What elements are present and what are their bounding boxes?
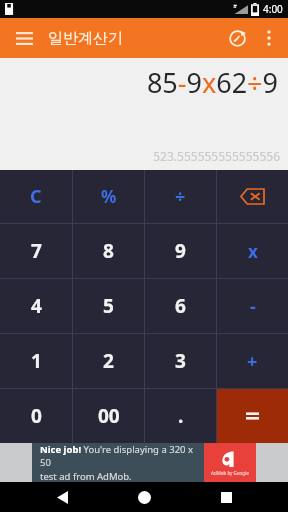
staticText: 2	[103, 348, 114, 374]
button[interactable]: ÷	[145, 170, 216, 223]
staticText: 00	[98, 403, 120, 429]
button[interactable]: 6	[145, 279, 216, 333]
button[interactable]: Advertisement	[0, 443, 288, 482]
button[interactable]: 1	[0, 334, 72, 388]
staticText: 3	[175, 348, 186, 374]
staticText: 5	[103, 293, 114, 319]
button[interactable]: 3	[145, 334, 216, 388]
button[interactable]: 9	[145, 224, 216, 278]
staticText: %	[101, 185, 117, 208]
staticText: 85-9x62÷9	[146, 64, 278, 101]
staticText: .	[178, 403, 184, 429]
button[interactable]: More options	[254, 23, 284, 53]
button[interactable]: Equals	[217, 389, 288, 443]
staticText: 8	[103, 238, 114, 264]
button[interactable]: 0	[0, 389, 72, 443]
button[interactable]: 5	[73, 279, 144, 333]
button[interactable]: x	[217, 224, 288, 278]
staticText: ÷	[175, 184, 186, 209]
button[interactable]: .	[145, 389, 216, 443]
staticText: test ad from AdMob.	[40, 470, 132, 482]
button[interactable]: 7	[0, 224, 72, 278]
button[interactable]: -	[217, 279, 288, 333]
button[interactable]: Home	[124, 482, 164, 512]
staticText: 일반계산기	[48, 29, 123, 48]
staticText: -	[250, 294, 256, 319]
button[interactable]: Recents	[206, 482, 246, 512]
button[interactable]: 00	[73, 389, 144, 443]
staticText: 4	[31, 293, 42, 319]
button[interactable]: %	[73, 170, 144, 223]
button[interactable]: C	[0, 170, 72, 223]
staticText: Nice job! You're displaying a 320 x 50	[40, 443, 204, 469]
button[interactable]: 8	[73, 224, 144, 278]
staticText: 9	[175, 238, 186, 264]
button[interactable]: 4	[0, 279, 72, 333]
staticText: x	[248, 240, 258, 263]
staticText: AdMob by Google	[211, 470, 249, 476]
button[interactable]: Menu	[8, 22, 40, 54]
staticText: C	[30, 184, 42, 209]
button[interactable]: +	[217, 334, 288, 388]
staticText: 0	[31, 403, 42, 429]
staticText: 1	[31, 348, 42, 374]
staticText: 523.555555555555556	[153, 148, 280, 164]
staticText: 7	[31, 238, 42, 264]
button[interactable]: Backspace	[217, 170, 288, 223]
staticText: +	[247, 349, 258, 374]
button[interactable]: Back	[42, 482, 82, 512]
button[interactable]: 2	[73, 334, 144, 388]
staticText: 6	[175, 293, 186, 319]
button[interactable]: History	[220, 21, 254, 55]
staticText: 4:00	[263, 2, 283, 16]
